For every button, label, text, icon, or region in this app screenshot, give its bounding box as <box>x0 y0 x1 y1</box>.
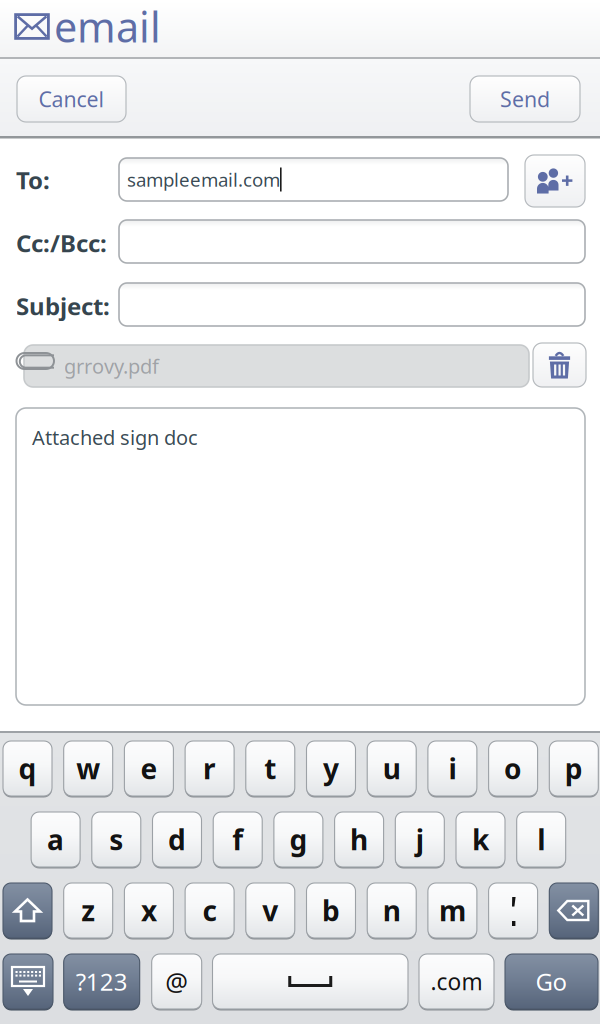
staticText: @ <box>165 965 188 998</box>
staticText: p <box>565 750 583 787</box>
button[interactable]: s <box>92 812 141 867</box>
button[interactable] <box>549 883 598 938</box>
staticText: d <box>168 821 186 858</box>
staticText: m <box>439 892 466 929</box>
button[interactable]: m <box>428 883 477 938</box>
staticText: f <box>232 821 243 858</box>
button[interactable]: w <box>64 741 113 796</box>
staticText: a <box>47 821 64 858</box>
staticText: q <box>18 750 36 787</box>
staticText: k <box>472 821 489 858</box>
staticText: .com <box>430 966 482 996</box>
button[interactable]: @ <box>152 954 202 1009</box>
staticText: To: <box>16 164 50 196</box>
staticText: Cc:/Bcc: <box>16 227 107 259</box>
button[interactable] <box>3 954 53 1009</box>
button[interactable]: n <box>367 883 416 938</box>
staticText: ?123 <box>76 966 128 997</box>
button[interactable]: r <box>185 741 234 796</box>
button[interactable]: Go <box>505 954 598 1009</box>
staticText: x <box>141 892 157 929</box>
button[interactable]: Cancel <box>17 76 126 122</box>
button[interactable]: k <box>456 812 505 867</box>
staticText: b <box>322 892 340 929</box>
button[interactable]: q <box>3 741 52 796</box>
button[interactable]: b <box>306 883 355 938</box>
staticText: grrovy.pdf <box>64 353 159 379</box>
staticText: c <box>203 892 217 929</box>
staticText: l <box>537 821 545 858</box>
button[interactable] <box>3 883 52 938</box>
button[interactable]: d <box>152 812 201 867</box>
button[interactable]: c <box>185 883 234 938</box>
button[interactable]: x <box>124 883 173 938</box>
button[interactable]: p <box>549 741 598 796</box>
button[interactable]: ?123 <box>64 954 140 1009</box>
staticText: sampleemail.com <box>127 167 280 192</box>
staticText: r <box>203 750 216 787</box>
button[interactable]: Send <box>470 76 580 122</box>
button[interactable]: y <box>306 741 355 796</box>
button[interactable]: e <box>124 741 173 796</box>
button[interactable]: v <box>246 883 295 938</box>
staticText: Cancel <box>38 85 104 113</box>
staticText: Attached sign doc <box>32 424 198 451</box>
staticText: Subject: <box>16 290 110 322</box>
button[interactable]: .com <box>419 954 494 1009</box>
button[interactable]: Add recipients from contacts <box>525 155 585 207</box>
button[interactable]: t <box>246 741 295 796</box>
staticText: h <box>350 821 368 858</box>
staticText: u <box>383 750 401 787</box>
staticText: Send <box>500 85 550 113</box>
button[interactable]: a <box>31 812 80 867</box>
staticText: i <box>448 750 456 787</box>
button[interactable] <box>212 954 408 1009</box>
staticText: o <box>504 750 522 787</box>
button[interactable]: g <box>274 812 323 867</box>
staticText: j <box>416 821 424 858</box>
staticText: Go <box>535 966 567 997</box>
button[interactable]: u <box>367 741 416 796</box>
button[interactable]: o <box>489 741 538 796</box>
button[interactable]: Remove attachment <box>533 343 586 387</box>
staticText: s <box>109 821 123 858</box>
button[interactable]: h <box>335 812 384 867</box>
staticText: e <box>140 750 157 787</box>
button[interactable] <box>489 883 538 938</box>
staticText: n <box>383 892 401 929</box>
button[interactable]: f <box>213 812 262 867</box>
button[interactable]: l <box>517 812 566 867</box>
button[interactable]: i <box>428 741 477 796</box>
staticText: v <box>262 892 278 929</box>
staticText: g <box>289 821 307 858</box>
button[interactable]: z <box>64 883 113 938</box>
staticText: t <box>264 750 276 787</box>
staticText: email <box>54 0 161 54</box>
button[interactable]: j <box>395 812 444 867</box>
staticText: y <box>323 750 339 787</box>
staticText: w <box>76 750 100 787</box>
staticText: z <box>81 892 95 929</box>
